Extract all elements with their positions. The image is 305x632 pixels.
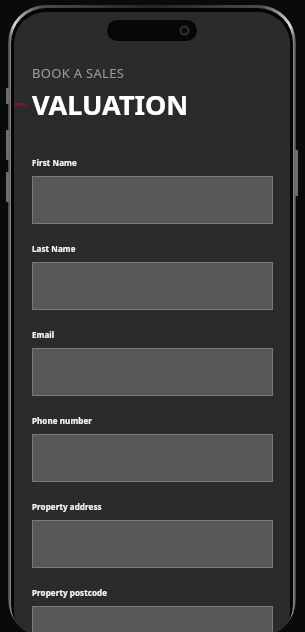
staticText: BOOK A SALES: [32, 64, 125, 82]
other: Dynamic Island: [107, 20, 197, 41]
staticText: Email: [32, 329, 55, 340]
button[interactable]: [32, 434, 273, 482]
staticText: Property postcode: [32, 587, 108, 598]
button[interactable]: [32, 176, 273, 224]
staticText: First Name: [32, 157, 77, 168]
staticText: Last Name: [32, 243, 76, 254]
button[interactable]: [32, 262, 273, 310]
button[interactable]: [32, 606, 273, 632]
other: Volume down: [6, 172, 9, 202]
staticText: Property address: [32, 501, 102, 512]
button[interactable]: [32, 348, 273, 396]
other: Silent switch: [6, 88, 9, 104]
staticText: VALUATION: [32, 86, 189, 123]
button[interactable]: [32, 520, 273, 568]
other: Power: [295, 150, 298, 196]
other: Volume up: [6, 130, 9, 160]
staticText: Phone number: [32, 415, 93, 426]
